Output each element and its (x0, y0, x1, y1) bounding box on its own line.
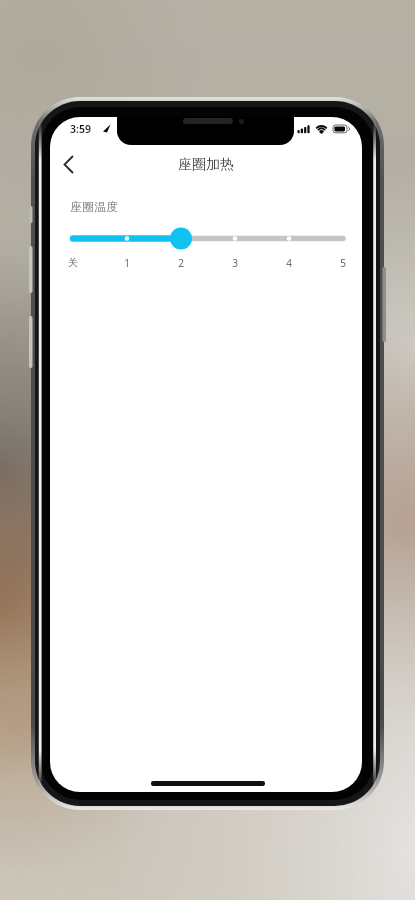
button[interactable] (52, 145, 92, 185)
staticText: 3 (232, 256, 238, 270)
staticText: 1 (124, 256, 130, 270)
staticText: 关 (68, 256, 78, 269)
staticText: 3:59 (70, 122, 91, 136)
button[interactable] (60, 221, 352, 257)
staticText: 4 (286, 256, 292, 270)
staticText: 座圈温度 (70, 199, 118, 214)
staticText: 5 (340, 256, 346, 270)
staticText: 座圈加热 (178, 156, 234, 174)
staticText: 2 (178, 256, 184, 270)
